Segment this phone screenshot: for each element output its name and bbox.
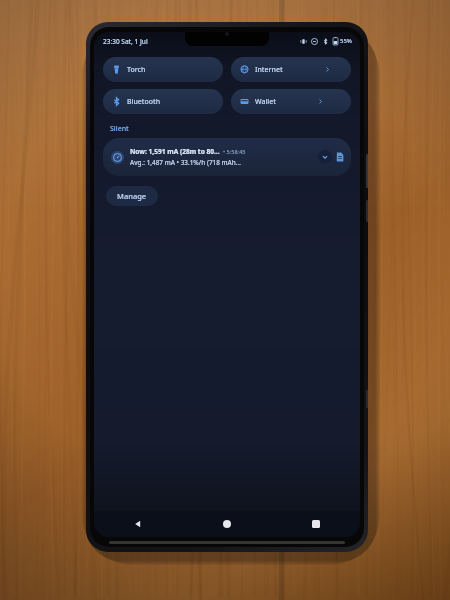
staticText: Torch: [127, 65, 146, 75]
button[interactable]: Back: [94, 511, 182, 537]
staticText: Avg.: 1,487 mA • 33.1%/h (718 mAh…: [130, 158, 241, 167]
button[interactable]: Now: 1,591 mA (28m to 80…: [103, 138, 351, 176]
staticText: Wallet: [255, 97, 276, 107]
other: Notification badge: [336, 152, 344, 162]
staticText: • 5:58:45: [223, 148, 246, 156]
staticText: Internet: [255, 65, 283, 75]
staticText: Manage: [117, 191, 147, 201]
button[interactable]: Expand notification: [318, 150, 332, 164]
button[interactable]: Manage: [106, 186, 158, 206]
button[interactable]: Internet: [231, 57, 351, 82]
staticText: 23:30 Sat, 1 Jul: [103, 37, 148, 46]
button[interactable]: Recent apps: [271, 511, 360, 537]
staticText: Silent: [110, 124, 129, 134]
staticText: 55%: [340, 37, 352, 45]
button[interactable]: Torch: [103, 57, 223, 82]
staticText: Bluetooth: [127, 97, 161, 107]
staticText: Now: 1,591 mA (28m to 80…: [130, 147, 220, 156]
button[interactable]: Wallet: [231, 89, 351, 114]
button[interactable]: Home: [182, 511, 271, 537]
button[interactable]: Bluetooth: [103, 89, 223, 114]
